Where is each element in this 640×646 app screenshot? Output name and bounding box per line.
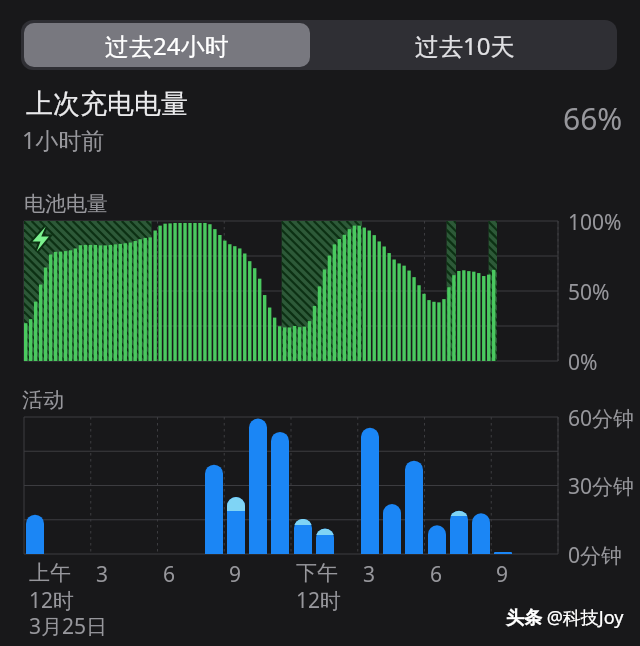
staticText: 3	[96, 560, 109, 589]
staticText: 30分钟	[568, 472, 635, 501]
staticText: 上次充电电量	[26, 87, 188, 121]
staticText: 电池电量	[24, 191, 108, 217]
staticText: 3	[363, 560, 376, 589]
staticText: 头条	[506, 607, 542, 630]
staticText: 6	[163, 560, 176, 589]
staticText: 0%	[568, 348, 598, 377]
staticText: 50%	[568, 278, 610, 307]
staticText: 66%	[563, 98, 623, 139]
staticText: 12时	[296, 586, 342, 615]
staticText: 1小时前	[22, 124, 105, 155]
staticText: 过去10天	[415, 29, 515, 62]
staticText: 9	[229, 560, 242, 589]
staticText: 活动	[22, 387, 64, 413]
staticText: 上午	[29, 560, 71, 586]
staticText: 3月25日	[29, 612, 108, 641]
staticText: 12时	[29, 586, 75, 615]
staticText: 60分钟	[568, 404, 635, 433]
button[interactable]: 过去24小时	[24, 23, 310, 67]
staticText: 过去24小时	[105, 29, 229, 62]
staticText: 下午	[296, 560, 338, 586]
staticText: 100%	[568, 208, 622, 237]
button[interactable]: 过去10天	[313, 20, 617, 70]
staticText: 0分钟	[568, 541, 623, 570]
staticText: 6	[430, 560, 443, 589]
staticText: 9	[496, 560, 509, 589]
staticText: @科技Joy	[542, 605, 624, 630]
